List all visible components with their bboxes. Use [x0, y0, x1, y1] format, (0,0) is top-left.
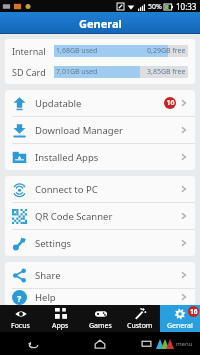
staticText: QR Code Scanner	[35, 210, 113, 223]
staticText: Apps	[52, 321, 69, 331]
button[interactable]: Installed Apps	[5, 144, 195, 170]
staticText: 1,68GB used	[56, 46, 98, 56]
button[interactable]: Share	[5, 262, 195, 289]
staticText: Internal	[12, 45, 46, 57]
staticText: 3,85GB free	[147, 67, 186, 77]
staticText: 0,29GB free	[147, 46, 186, 56]
button[interactable]: QR Code Scanner	[5, 203, 195, 230]
staticText: SD Card	[12, 66, 46, 78]
button[interactable]: Apps	[40, 305, 80, 332]
staticText: Share	[35, 269, 61, 282]
staticText: Updatable	[35, 97, 82, 110]
staticText: Settings	[35, 237, 72, 250]
button[interactable]: Updatable	[5, 90, 195, 117]
button[interactable]: ?	[5, 289, 195, 305]
button[interactable]: Settings	[5, 230, 195, 256]
staticText: Installed Apps	[35, 151, 99, 164]
button[interactable]: Connect to PC	[5, 176, 195, 203]
other: Recents	[141, 338, 152, 349]
staticText: Help	[35, 291, 56, 304]
staticText: Games	[89, 321, 112, 331]
button[interactable]: General	[160, 305, 200, 332]
staticText: General	[79, 16, 122, 31]
staticText: Custom	[127, 321, 153, 331]
staticText: General	[167, 321, 193, 331]
staticText: 10:33	[176, 1, 197, 12]
staticText: Download Manager	[35, 124, 123, 137]
other: Back	[27, 338, 39, 350]
staticText: Connect to PC	[35, 183, 98, 196]
other: Home	[94, 338, 106, 350]
button[interactable]: Download Manager	[5, 117, 195, 144]
staticText: Focus	[11, 321, 30, 331]
button[interactable]: Custom	[120, 305, 160, 332]
staticText: menu	[176, 340, 193, 348]
button[interactable]: Games	[80, 305, 120, 332]
staticText: 16	[190, 307, 198, 316]
staticText: 7,01GB used	[56, 67, 98, 77]
staticText: ?	[17, 292, 22, 304]
staticText: 50%	[148, 2, 162, 12]
staticText: 16	[166, 98, 175, 108]
button[interactable]: Focus	[0, 305, 40, 332]
